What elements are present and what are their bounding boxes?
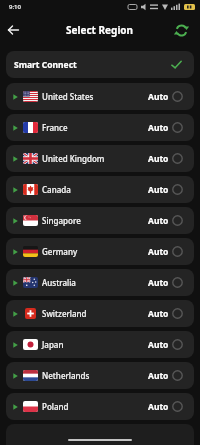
staticText: Australia [42,277,76,288]
button[interactable]: Japan [6,331,194,358]
button[interactable]: Netherlands [6,362,194,389]
staticText: Japan [42,339,64,350]
button[interactable]: Poland [6,393,194,420]
staticText: France [42,122,68,133]
button[interactable]: Germany [6,238,194,265]
staticText: Auto [148,277,169,289]
staticText: Auto [148,122,169,134]
staticText: Auto [148,184,169,196]
staticText: Canada [42,184,71,195]
button[interactable]: United States [6,83,194,110]
button[interactable]: Canada [6,176,194,203]
staticText: Netherlands [42,370,90,381]
staticText: Auto [148,308,169,320]
button[interactable] [4,21,22,39]
button[interactable]: Australia [6,269,194,296]
staticText: Auto [148,91,169,103]
button[interactable]: France [6,114,194,141]
staticText: Smart Connect [14,59,77,71]
staticText: Auto [148,370,169,382]
staticText: United States [42,91,94,102]
staticText: Singapore [42,215,81,226]
button[interactable] [172,21,190,39]
button[interactable]: Smart Connect [6,51,194,78]
staticText: Switzerland [42,308,87,319]
staticText: Germany [42,246,78,257]
staticText: Auto [148,339,169,351]
staticText: Select Region [66,23,134,37]
staticText: Auto [148,153,169,165]
button[interactable]: Switzerland [6,300,194,327]
button[interactable]: United Kingdom [6,145,194,172]
staticText: Auto [148,246,169,258]
button[interactable]: Singapore [6,207,194,234]
staticText: Poland [42,401,69,412]
staticText: United Kingdom [42,153,105,164]
staticText: 9:10 [9,3,21,11]
staticText: Auto [148,401,169,413]
staticText: Auto [148,215,169,227]
